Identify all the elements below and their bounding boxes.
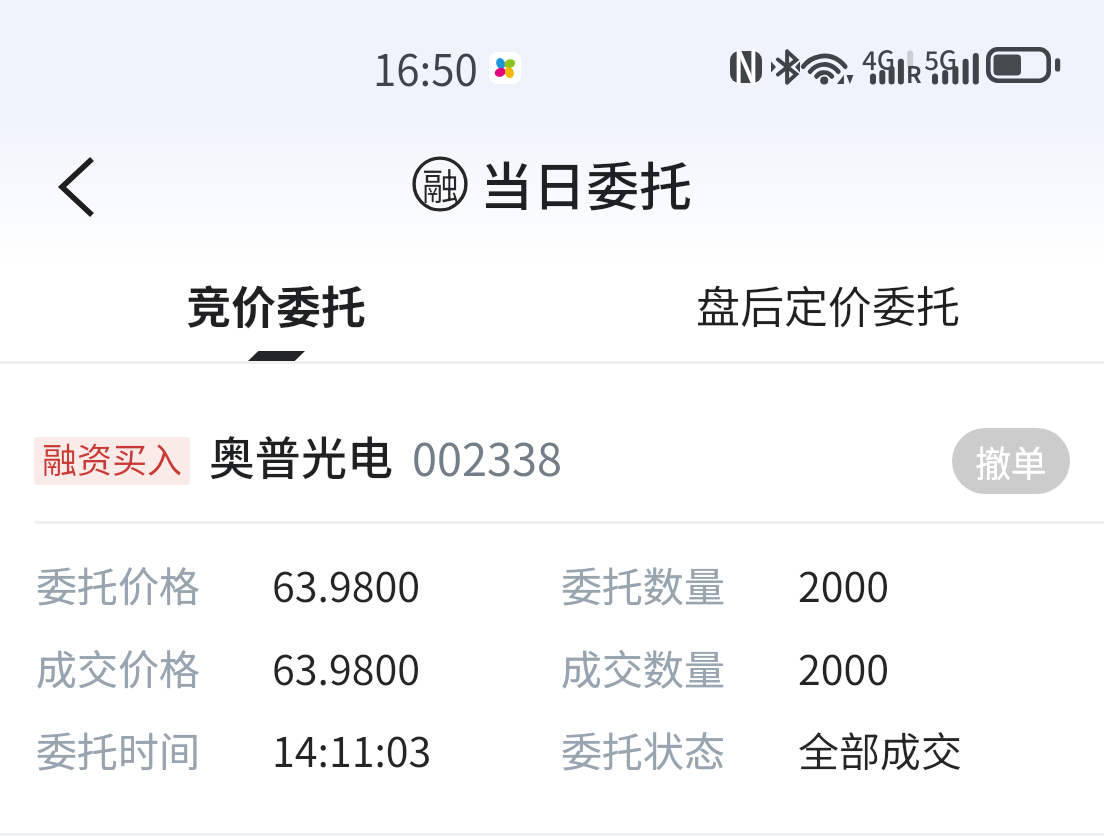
- staticText: 竞价委托: [186, 272, 367, 337]
- staticText: 盘后定价委托: [696, 272, 960, 336]
- button[interactable]: 撤单: [952, 428, 1070, 494]
- button[interactable]: 融资买入: [0, 363, 1104, 833]
- staticText: 5G: [924, 40, 958, 78]
- staticText: 14:11:03: [272, 719, 432, 778]
- staticText: 2000: [798, 637, 890, 696]
- staticText: 当日委托: [480, 145, 692, 222]
- staticText: 63.9800: [272, 554, 420, 613]
- staticText: 63.9800: [272, 637, 420, 696]
- staticText: 委托时间: [36, 719, 200, 778]
- staticText: 16:50: [373, 37, 478, 98]
- staticText: 4G: [862, 40, 896, 78]
- staticText: 撤单: [975, 435, 1048, 487]
- staticText: 2000: [798, 554, 890, 613]
- staticText: 委托价格: [36, 554, 200, 613]
- staticText: 成交价格: [36, 637, 200, 696]
- staticText: 委托数量: [561, 554, 725, 613]
- button[interactable]: 盘后定价委托: [552, 272, 1104, 362]
- staticText: R: [906, 56, 922, 89]
- button[interactable]: Back: [40, 150, 114, 224]
- button[interactable]: 竞价委托: [0, 272, 552, 362]
- staticText: 融: [422, 157, 459, 211]
- staticText: 奥普光电: [209, 422, 393, 489]
- staticText: 成交数量: [561, 637, 725, 696]
- staticText: 全部成交: [798, 719, 962, 778]
- staticText: 融资买入: [42, 437, 183, 480]
- staticText: 002338: [412, 424, 562, 489]
- staticText: 委托状态: [561, 719, 725, 778]
